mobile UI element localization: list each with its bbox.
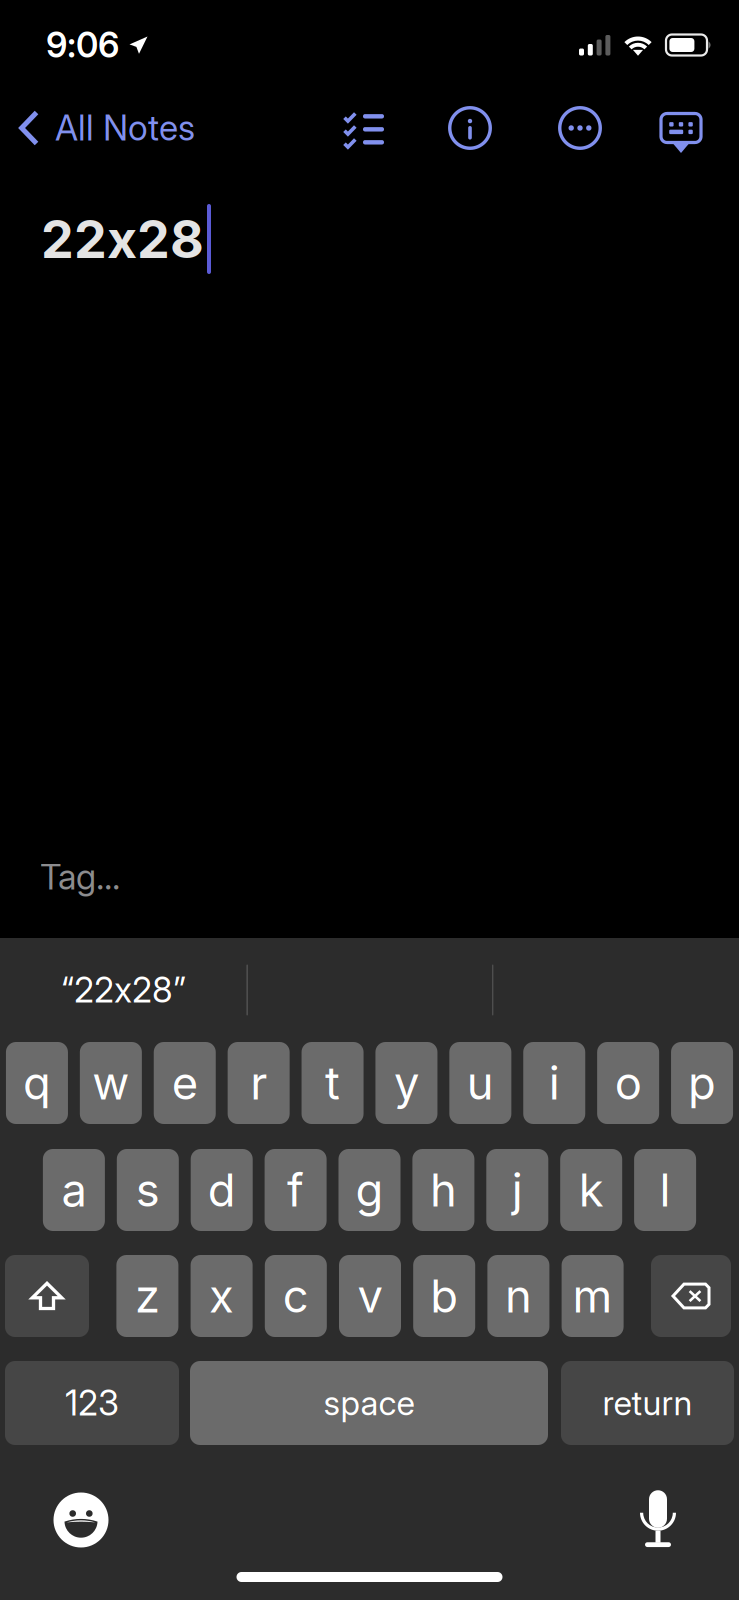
staticText: r: [250, 1056, 267, 1110]
staticText: h: [430, 1163, 457, 1217]
staticText: space: [323, 1383, 414, 1423]
staticText: p: [688, 1056, 716, 1110]
button[interactable]: x: [191, 1255, 253, 1337]
staticText: e: [172, 1056, 198, 1110]
staticText: All Notes: [55, 107, 195, 149]
button[interactable]: return: [561, 1361, 734, 1445]
button[interactable]: v: [339, 1255, 401, 1337]
button[interactable]: s: [117, 1149, 179, 1231]
button[interactable]: t: [302, 1042, 364, 1124]
staticText: n: [505, 1269, 532, 1323]
button[interactable]: h: [412, 1149, 474, 1231]
staticText: q: [23, 1056, 51, 1110]
staticText: y: [394, 1056, 419, 1110]
button[interactable]: c: [265, 1255, 327, 1337]
staticText: u: [467, 1056, 494, 1110]
button[interactable]: j: [486, 1149, 548, 1231]
staticText: m: [573, 1269, 613, 1323]
staticText: b: [430, 1269, 458, 1323]
button[interactable]: Hide keyboard: [646, 96, 716, 160]
staticText: i: [549, 1056, 560, 1110]
button[interactable]: Delete: [651, 1255, 731, 1337]
button[interactable]: q: [6, 1042, 68, 1124]
button[interactable]: f: [265, 1149, 327, 1231]
button[interactable]: w: [80, 1042, 142, 1124]
button[interactable]: o: [597, 1042, 659, 1124]
button[interactable]: Emoji keyboard: [47, 1486, 115, 1554]
staticText: l: [660, 1163, 671, 1217]
button[interactable]: e: [154, 1042, 216, 1124]
button[interactable]: Note info: [435, 96, 505, 160]
staticText: return: [602, 1383, 692, 1423]
staticText: “22x28”: [61, 969, 186, 1011]
button[interactable]: More options: [545, 96, 615, 160]
staticText: v: [357, 1269, 382, 1323]
staticText: 123: [65, 1382, 119, 1424]
staticText: k: [579, 1163, 604, 1217]
button[interactable]: All Notes: [0, 96, 205, 160]
button[interactable]: space: [190, 1361, 548, 1445]
button[interactable]: k: [560, 1149, 622, 1231]
staticText: a: [61, 1163, 86, 1217]
button[interactable]: z: [116, 1255, 178, 1337]
button[interactable]: y: [375, 1042, 437, 1124]
button[interactable]: Shift: [5, 1255, 89, 1337]
button[interactable]: Dictation: [624, 1486, 692, 1554]
staticText: j: [512, 1163, 523, 1217]
button[interactable]: g: [338, 1149, 400, 1231]
staticText: z: [135, 1269, 160, 1323]
button[interactable]: r: [228, 1042, 290, 1124]
staticText: Tag...: [40, 856, 120, 898]
button[interactable]: Checklist: [329, 96, 399, 160]
button[interactable]: m: [562, 1255, 624, 1337]
staticText: s: [136, 1163, 160, 1217]
staticText: w: [92, 1056, 129, 1110]
button[interactable]: n: [487, 1255, 549, 1337]
button[interactable]: d: [191, 1149, 253, 1231]
staticText: o: [615, 1056, 642, 1110]
staticText: x: [209, 1269, 234, 1323]
button[interactable]: i: [523, 1042, 585, 1124]
staticText: c: [283, 1269, 309, 1323]
button[interactable]: u: [449, 1042, 511, 1124]
button[interactable]: 123: [5, 1361, 179, 1445]
staticText: t: [325, 1056, 340, 1110]
button[interactable]: l: [634, 1149, 696, 1231]
staticText: d: [208, 1163, 236, 1217]
button[interactable]: “22x28”: [0, 960, 246, 1020]
button[interactable]: p: [671, 1042, 733, 1124]
button[interactable]: a: [43, 1149, 105, 1231]
button[interactable]: Tag...: [0, 857, 120, 897]
staticText: f: [287, 1163, 304, 1217]
staticText: g: [355, 1163, 383, 1217]
staticText: 22x28: [41, 207, 204, 270]
button[interactable]: b: [413, 1255, 475, 1337]
staticText: 9:06: [46, 24, 119, 66]
